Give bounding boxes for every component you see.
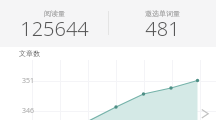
button[interactable]: 阅读量	[0, 0, 108, 47]
button[interactable]: 邀选单词量	[108, 0, 216, 47]
staticText: 481	[145, 15, 180, 42]
staticText: 邀选单词量	[145, 9, 180, 18]
staticText: 351	[22, 76, 35, 86]
staticText: 文章数	[19, 49, 40, 58]
staticText: 阅读量	[44, 9, 65, 18]
staticText: 125644	[20, 15, 89, 42]
button[interactable]: More details	[196, 104, 214, 120]
staticText: 346	[22, 106, 35, 116]
